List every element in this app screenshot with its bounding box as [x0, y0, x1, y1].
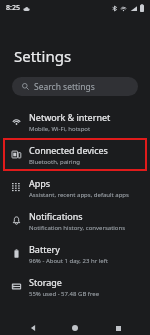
- staticText: Battery: [29, 243, 60, 255]
- staticText: Storage: [29, 276, 62, 288]
- staticText: Search settings: [34, 81, 95, 93]
- staticText: Assistant, recent apps, default apps: [29, 191, 129, 199]
- staticText: Network & internet: [29, 111, 111, 123]
- button[interactable]: Home: [65, 321, 85, 335]
- staticText: Mobile, Wi-Fi, hotspot: [29, 125, 91, 133]
- button[interactable]: Battery: [3, 237, 147, 270]
- button[interactable]: Connected devices: [3, 138, 147, 171]
- button[interactable]: Notifications: [3, 204, 147, 237]
- button[interactable]: Storage: [3, 270, 147, 303]
- staticText: Apps: [29, 177, 51, 189]
- button[interactable]: Recent apps: [108, 321, 128, 335]
- staticText: Notifications: [29, 210, 83, 222]
- button[interactable]: Apps: [3, 171, 147, 204]
- staticText: 55% used - 57.48 GB free: [29, 290, 100, 298]
- staticText: 96% - About 1 day, 23 hr left: [29, 257, 108, 265]
- button[interactable]: Back: [23, 321, 43, 335]
- staticText: Notification history, conversations: [29, 224, 126, 232]
- staticText: 8:25: [6, 3, 20, 13]
- staticText: Connected devices: [29, 144, 108, 156]
- staticText: Bluetooth, pairing: [29, 158, 81, 166]
- staticText: Settings: [14, 46, 72, 66]
- button[interactable]: Network & internet: [3, 105, 147, 138]
- button[interactable]: Search settings: [12, 77, 138, 96]
